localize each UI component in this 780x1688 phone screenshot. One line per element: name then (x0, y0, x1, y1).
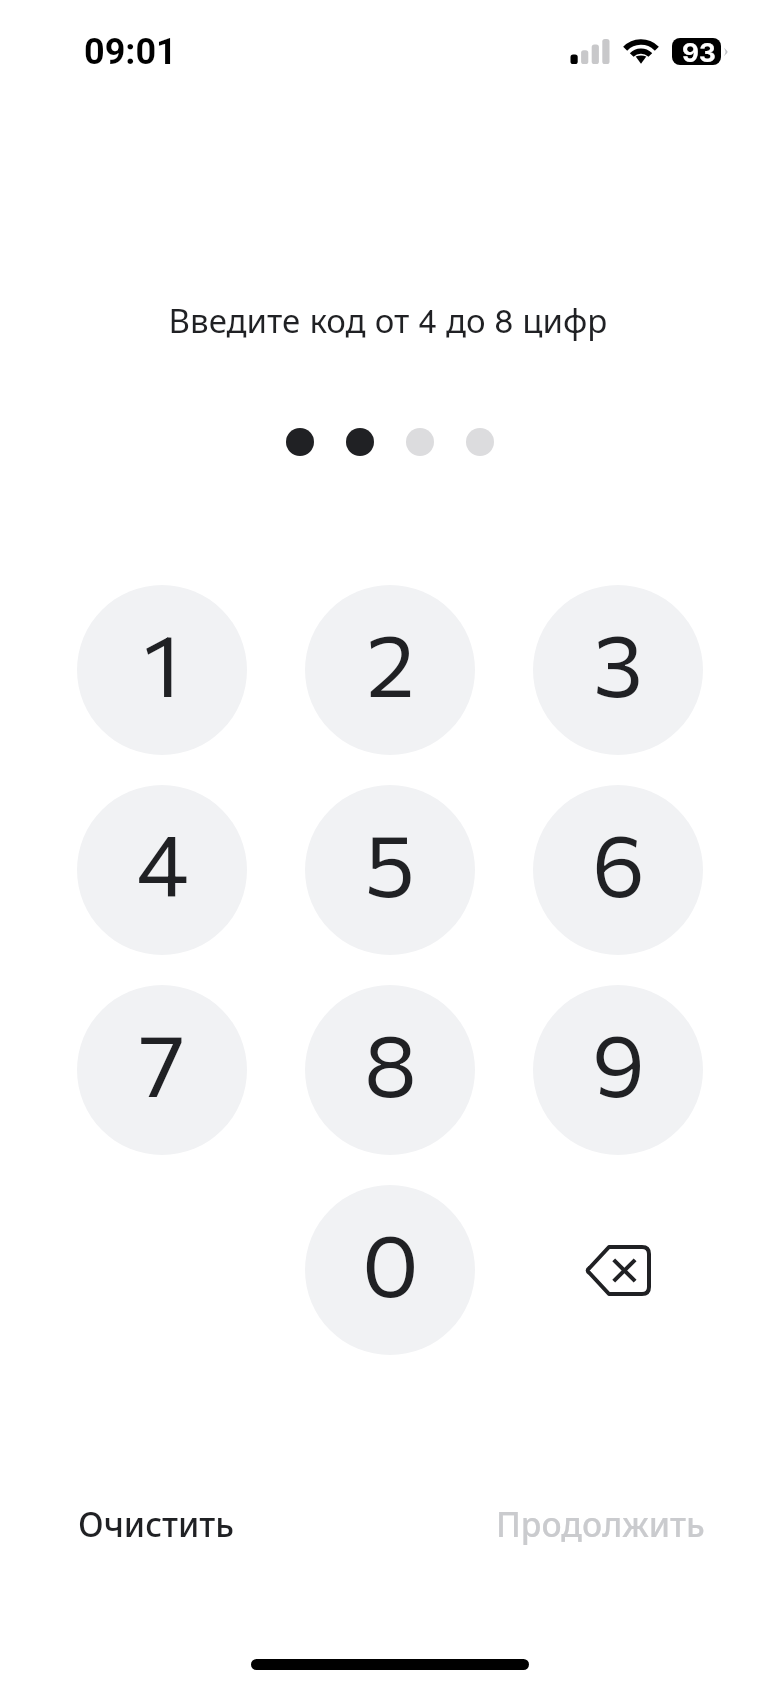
staticText: Очистить (78, 1501, 235, 1547)
staticText: 0 (362, 1209, 419, 1315)
staticText: 4 (136, 809, 189, 915)
button[interactable]: 1 (77, 585, 247, 755)
staticText: 9 (592, 1009, 645, 1115)
staticText: 3 (593, 609, 643, 715)
staticText: 7 (139, 1009, 185, 1115)
button[interactable]: 8 (305, 985, 475, 1155)
button[interactable]: 7 (77, 985, 247, 1155)
staticText: 1 (143, 609, 181, 715)
button[interactable]: 3 (533, 585, 703, 755)
button[interactable]: 4 (77, 785, 247, 955)
button[interactable]: 5 (305, 785, 475, 955)
button[interactable]: Backspace (533, 1185, 703, 1355)
button[interactable]: 2 (305, 585, 475, 755)
staticText: 5 (365, 809, 415, 915)
button[interactable]: Продолжить (486, 1485, 715, 1563)
button[interactable]: 9 (533, 985, 703, 1155)
staticText: 8 (364, 1009, 417, 1115)
staticText: Продолжить (496, 1501, 705, 1547)
button[interactable]: 0 (305, 1185, 475, 1355)
staticText: 09:01 (84, 31, 177, 73)
staticText: 6 (592, 809, 645, 915)
staticText: 93 (682, 38, 716, 64)
staticText: 2 (366, 609, 415, 715)
button[interactable]: 6 (533, 785, 703, 955)
button[interactable]: Очистить (68, 1485, 245, 1563)
staticText: Введите код от 4 до 8 цифр (0, 295, 778, 343)
